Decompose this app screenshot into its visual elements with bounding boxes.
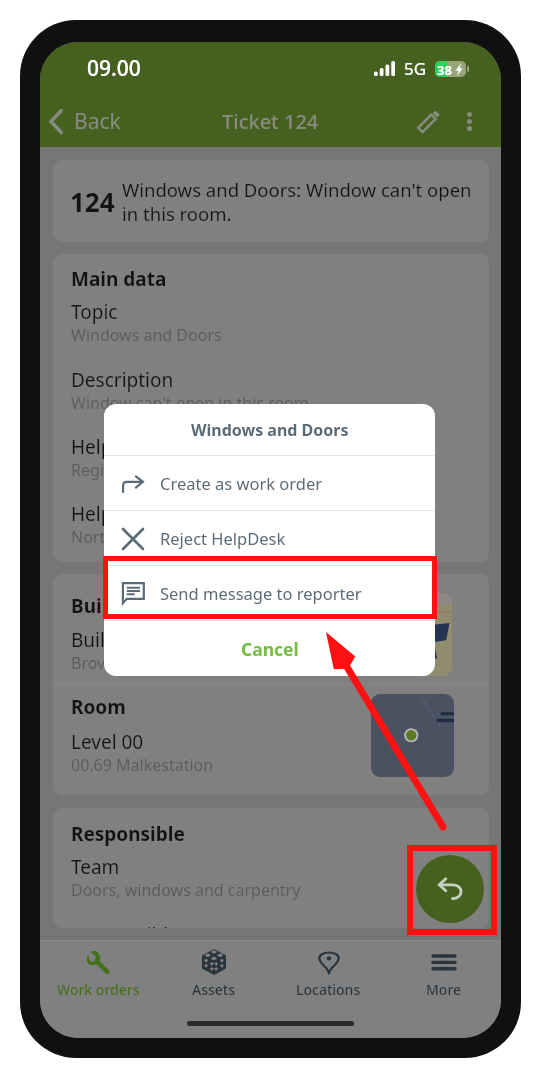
staticText: Building 5 bbox=[71, 627, 161, 653]
staticText: Description bbox=[71, 367, 174, 393]
button[interactable]: Reject HelpDesk bbox=[104, 511, 435, 565]
staticText: 38 bbox=[437, 61, 452, 77]
staticText: Ticket 124 bbox=[222, 108, 319, 135]
staticText: Assets bbox=[192, 980, 235, 999]
staticText: 5G bbox=[404, 57, 427, 80]
staticText: Cancel bbox=[241, 637, 299, 661]
staticText: Window can't open in this room. bbox=[71, 392, 314, 414]
button[interactable]: 124 bbox=[53, 160, 489, 242]
staticText: Reject HelpDesk bbox=[160, 527, 286, 549]
staticText: Work orders bbox=[57, 980, 140, 999]
button[interactable]: More bbox=[386, 941, 501, 1011]
button[interactable]: Locations bbox=[271, 941, 386, 1011]
staticText: North Area bbox=[71, 526, 154, 548]
staticText: Locations bbox=[296, 980, 361, 999]
staticText: Main data bbox=[71, 266, 167, 292]
staticText: Send message to reporter bbox=[160, 582, 362, 604]
button[interactable]: Back bbox=[40, 101, 131, 142]
staticText: Level 00 bbox=[71, 729, 144, 755]
staticText: Windows and Doors bbox=[71, 324, 222, 346]
button[interactable]: Edit bbox=[406, 99, 450, 143]
staticText: 124 bbox=[70, 184, 115, 219]
staticText: Team bbox=[71, 854, 120, 880]
staticText: Create as work order bbox=[160, 472, 323, 494]
staticText: Building bbox=[71, 593, 150, 619]
button[interactable]: Reply bbox=[416, 855, 484, 923]
button[interactable]: Work orders bbox=[40, 941, 156, 1011]
staticText: More bbox=[426, 980, 462, 999]
staticText: Windows and Doors bbox=[191, 419, 349, 441]
button[interactable]: Cancel bbox=[104, 621, 435, 676]
staticText: Brovej 10 bbox=[71, 652, 141, 674]
staticText: 09.00 bbox=[87, 54, 141, 83]
staticText: HelpDesk Area bbox=[71, 501, 203, 527]
button[interactable]: More options bbox=[450, 99, 488, 143]
staticText: Doors, windows and carpentry bbox=[71, 879, 301, 901]
staticText: 00.69 Malkestation bbox=[71, 754, 214, 776]
button[interactable]: Send message to reporter bbox=[104, 566, 435, 620]
button[interactable]: Create as work order bbox=[104, 456, 435, 510]
staticText: HelpDesk Region bbox=[71, 434, 224, 460]
staticText: Responsible bbox=[71, 922, 179, 928]
staticText: Responsible bbox=[71, 821, 185, 847]
staticText: Back bbox=[74, 107, 121, 136]
staticText: Windows and Doors: Window can't open in … bbox=[122, 177, 474, 226]
staticText: Region North bbox=[71, 459, 172, 481]
button[interactable]: Assets bbox=[156, 941, 271, 1011]
staticText: Room bbox=[71, 694, 126, 720]
staticText: Topic bbox=[71, 299, 118, 325]
